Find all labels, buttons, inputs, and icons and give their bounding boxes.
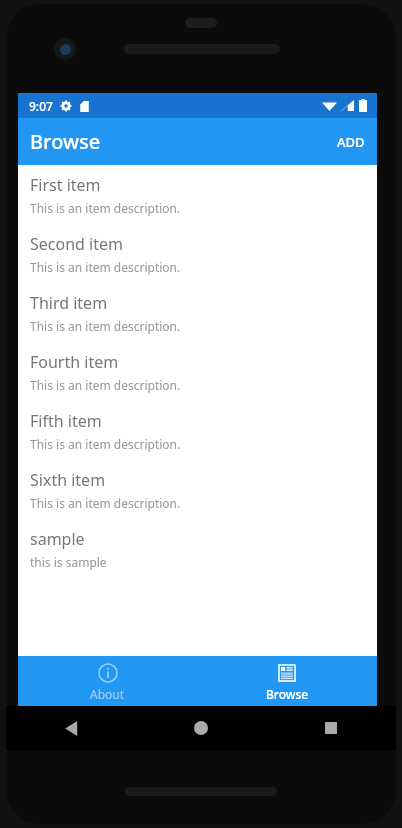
staticText: This is an item description. [30, 495, 181, 511]
button[interactable]: Third item [18, 283, 377, 342]
staticText: ADD [337, 133, 365, 151]
staticText: Second item [30, 233, 123, 255]
other: About [98, 663, 118, 683]
staticText: Browse [30, 128, 101, 155]
staticText: Fourth item [30, 351, 119, 373]
button[interactable]: Browse [197, 656, 377, 706]
staticText: Third item [30, 292, 108, 314]
button[interactable]: About [18, 656, 197, 706]
staticText: This is an item description. [30, 200, 181, 216]
staticText: Browse [266, 686, 309, 702]
staticText: Sixth item [30, 469, 106, 491]
staticText: This is an item description. [30, 377, 181, 393]
button[interactable]: Home [136, 706, 266, 750]
other: Browse [277, 663, 297, 683]
button[interactable]: Fifth item [18, 401, 377, 460]
staticText: About [90, 686, 125, 702]
other: Home [194, 721, 208, 735]
button[interactable]: sample [18, 519, 377, 578]
other: Back [64, 721, 79, 736]
button[interactable]: Sixth item [18, 460, 377, 519]
button[interactable]: Second item [18, 224, 377, 283]
button[interactable]: Fourth item [18, 342, 377, 401]
staticText: sample [30, 528, 85, 550]
staticText: This is an item description. [30, 318, 181, 334]
button[interactable]: First item [18, 165, 377, 224]
staticText: This is an item description. [30, 259, 181, 275]
button[interactable]: Recent apps [266, 706, 396, 750]
button[interactable]: ADD [325, 118, 377, 165]
staticText: 9:07 [29, 98, 53, 114]
staticText: This is an item description. [30, 436, 181, 452]
staticText: First item [30, 174, 101, 196]
staticText: Fifth item [30, 410, 102, 432]
staticText: this is sample [30, 554, 107, 570]
button[interactable]: Back [6, 706, 136, 750]
